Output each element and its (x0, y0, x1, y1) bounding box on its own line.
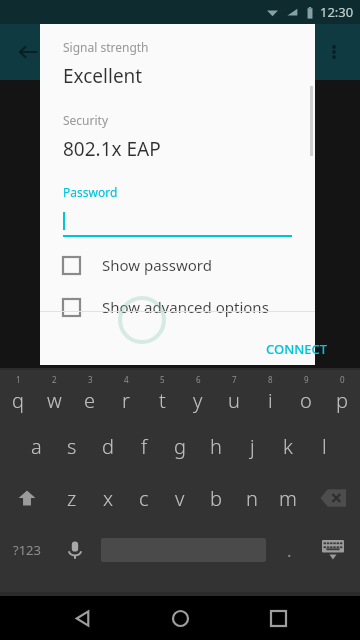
staticText: w (47, 387, 62, 414)
button[interactable]: Home (158, 596, 202, 640)
button[interactable]: 5 (144, 368, 180, 420)
button[interactable]: Recent apps (256, 596, 300, 640)
staticText: k (283, 433, 293, 460)
button[interactable] (63, 200, 292, 237)
staticText: Show advanced options (102, 297, 269, 317)
staticText: l (322, 433, 327, 460)
button[interactable]: h (198, 420, 234, 472)
button[interactable]: Back (8, 32, 48, 72)
staticText: d (102, 433, 114, 460)
staticText: g (174, 433, 186, 460)
staticText: 5 (160, 374, 165, 385)
button[interactable]: Hide keyboard (306, 524, 360, 576)
staticText: Excellent (63, 63, 143, 89)
staticText: ?123 (13, 541, 41, 559)
staticText: h (210, 433, 222, 460)
staticText: 6 (196, 374, 201, 385)
staticText: u (228, 387, 240, 414)
button[interactable]: a (18, 420, 54, 472)
button[interactable]: . (272, 524, 306, 576)
staticText: 9 (304, 374, 309, 385)
button[interactable]: Delete (306, 472, 360, 524)
staticText: 12:30 (320, 3, 354, 21)
button[interactable]: v (162, 472, 198, 524)
button[interactable]: Show password (63, 255, 299, 275)
button[interactable]: 4 (108, 368, 144, 420)
button[interactable]: m (270, 472, 306, 524)
button[interactable]: 8 (252, 368, 288, 420)
button[interactable]: d (90, 420, 126, 472)
staticText: m (279, 485, 297, 512)
button[interactable]: 1 (0, 368, 36, 420)
staticText: c (139, 485, 149, 512)
button[interactable]: 7 (216, 368, 252, 420)
button[interactable]: More options (314, 32, 354, 72)
button[interactable]: 6 (180, 368, 216, 420)
button[interactable]: x (90, 472, 126, 524)
staticText: 3 (88, 374, 93, 385)
staticText: Signal strength (63, 39, 149, 55)
button[interactable]: b (198, 472, 234, 524)
button[interactable]: Show advanced options (63, 297, 299, 317)
staticText: 7 (232, 374, 237, 385)
staticText: q (12, 387, 24, 414)
staticText: Password (63, 184, 118, 200)
button[interactable]: g (162, 420, 198, 472)
staticText: z (67, 485, 77, 512)
staticText: p (336, 387, 348, 414)
button[interactable]: Voice input (54, 524, 95, 576)
button[interactable]: z (54, 472, 90, 524)
staticText: e (84, 387, 96, 414)
staticText: n (246, 485, 258, 512)
staticText: 0 (340, 374, 345, 385)
button[interactable]: CONNECT (258, 334, 336, 364)
button[interactable]: k (270, 420, 306, 472)
staticText: j (250, 433, 255, 460)
staticText: 2 (52, 374, 57, 385)
staticText: 1 (16, 374, 21, 385)
staticText: y (193, 387, 203, 414)
button[interactable]: f (126, 420, 162, 472)
button[interactable]: 0 (324, 368, 360, 420)
button[interactable]: c (126, 472, 162, 524)
button[interactable]: Back (60, 596, 104, 640)
staticText: b (210, 485, 222, 512)
staticText: i (268, 387, 273, 414)
button[interactable]: Space (95, 524, 272, 576)
staticText: t (159, 387, 166, 414)
staticText: Security (63, 112, 109, 128)
button[interactable]: 9 (288, 368, 324, 420)
staticText: x (103, 485, 114, 512)
button[interactable]: 2 (36, 368, 72, 420)
staticText: 802.1x EAP (63, 136, 161, 162)
staticText: o (300, 387, 312, 414)
staticText: s (67, 433, 77, 460)
button[interactable]: n (234, 472, 270, 524)
staticText: Show password (102, 255, 212, 275)
staticText: 4 (124, 374, 129, 385)
button[interactable]: j (234, 420, 270, 472)
button[interactable]: 3 (72, 368, 108, 420)
staticText: . (287, 539, 292, 562)
staticText: 8 (268, 374, 273, 385)
staticText: f (141, 433, 148, 460)
staticText: r (122, 387, 130, 414)
button[interactable]: s (54, 420, 90, 472)
staticText: v (175, 485, 185, 512)
button[interactable]: ?123 (0, 524, 54, 576)
staticText: a (31, 433, 42, 460)
staticText: CONNECT (266, 340, 328, 358)
button[interactable]: l (306, 420, 342, 472)
button[interactable]: Shift (0, 472, 54, 524)
